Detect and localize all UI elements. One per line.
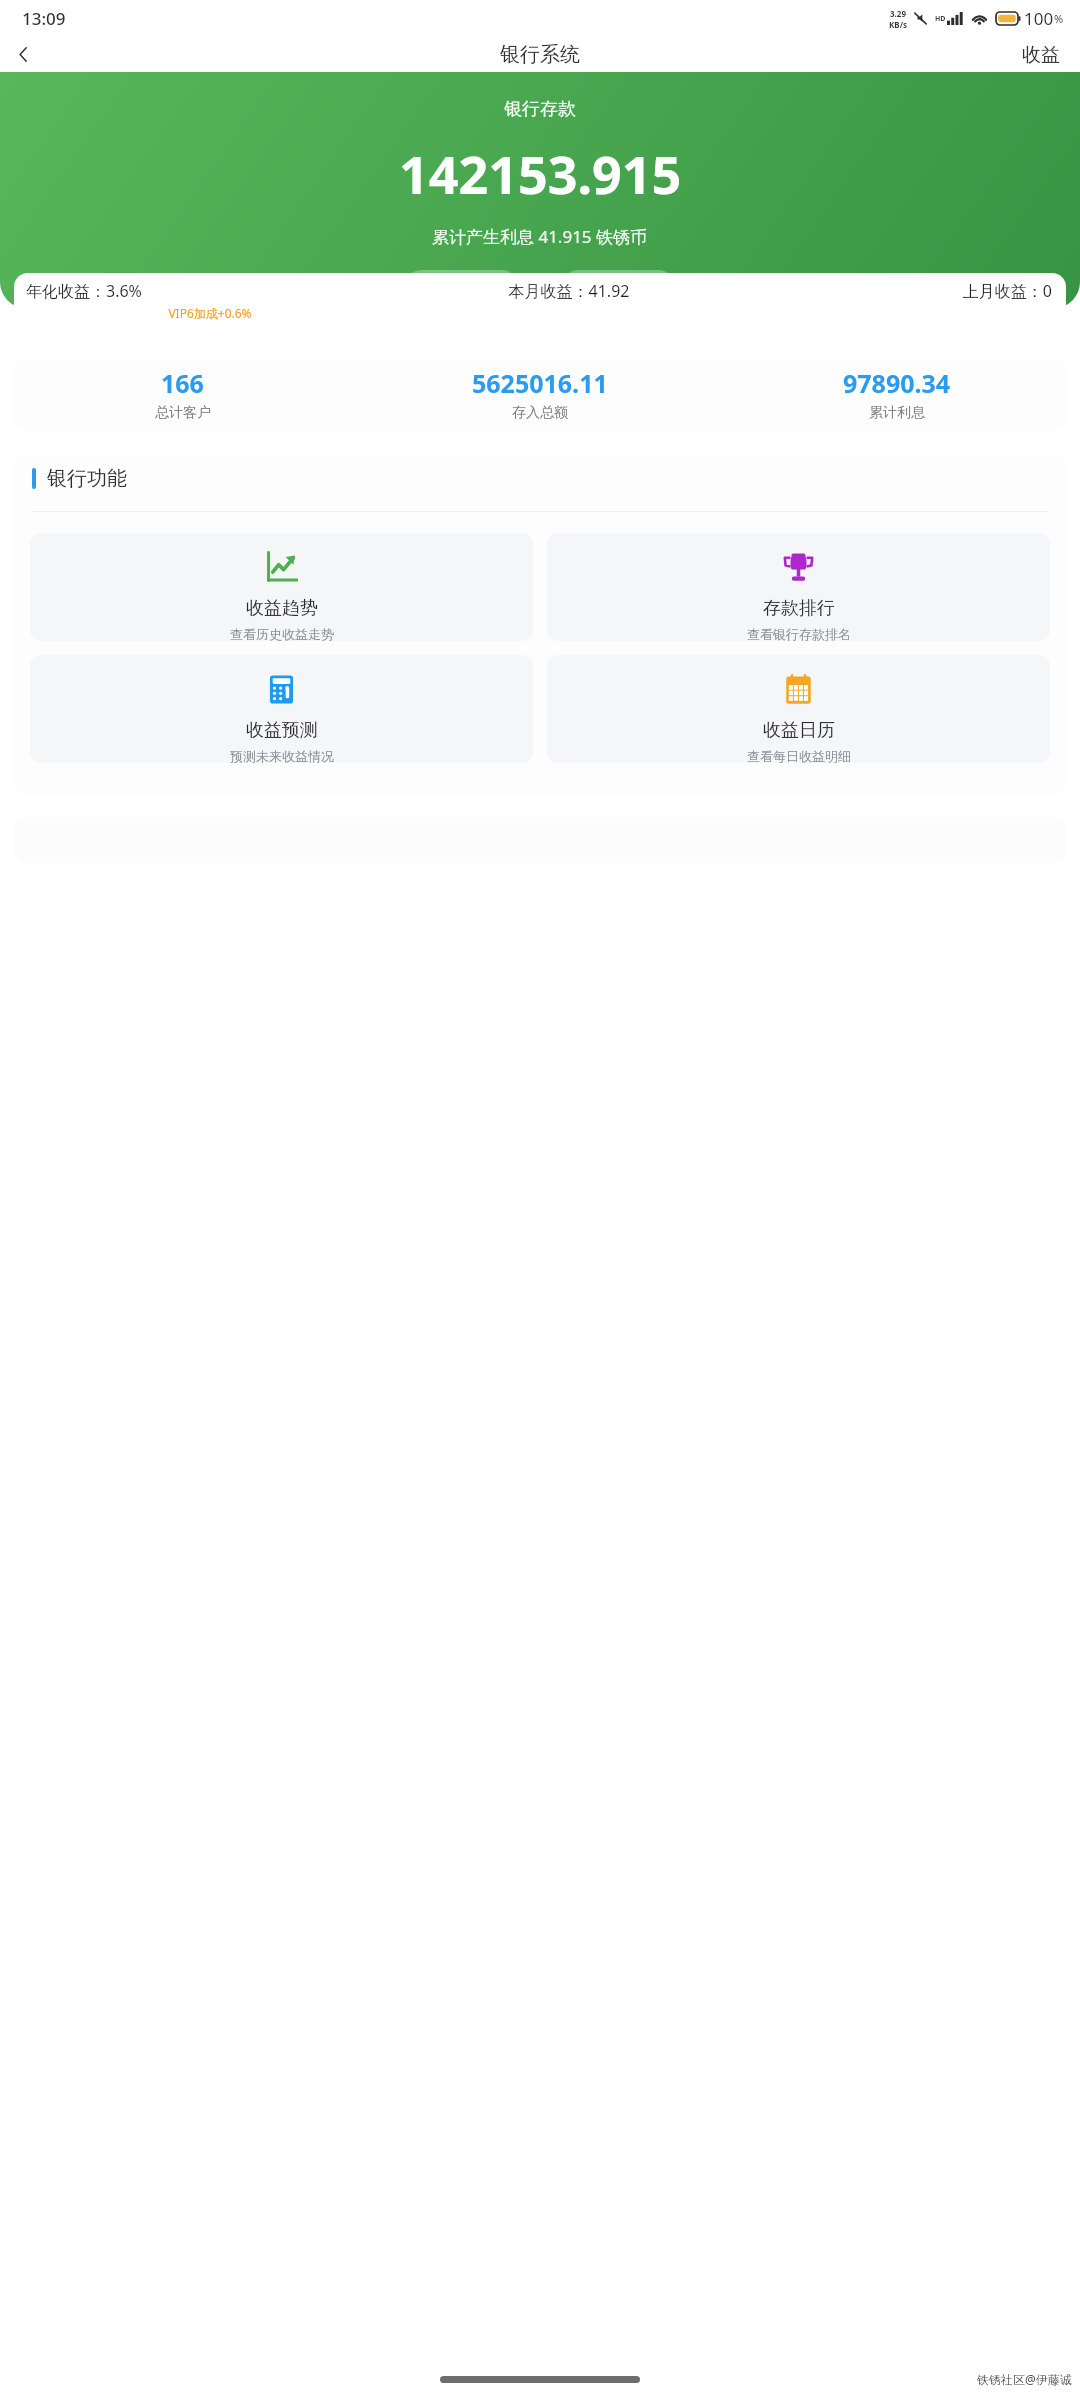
button[interactable]: Back [0,37,46,72]
staticText: 本月收益：41.92 [394,280,744,302]
staticText: 年化收益：3.6% [26,280,142,302]
staticText: 166 [161,366,204,400]
staticText: 查看历史收益走势 [230,626,334,641]
button[interactable]: 收益日历 [547,655,1050,763]
button[interactable]: 收益预测 [30,655,533,763]
staticText: 142153.915 [399,138,682,209]
staticText: 5625016.11 [472,366,608,400]
button[interactable]: 存入 [403,270,520,308]
button[interactable]: 转出 [560,270,677,308]
staticText: 总计客户 [155,404,211,422]
button[interactable]: 收益趋势 [30,533,533,641]
staticText: % [1054,11,1064,26]
staticText: VIP6加成+0.6% [26,305,394,321]
staticText: 收益预测 [246,719,318,742]
staticText: 查看每日收益明细 [747,748,851,763]
staticText: 收益 [1022,43,1060,66]
staticText: KB/s [889,19,907,30]
staticText: 100 [1024,7,1054,30]
button[interactable]: 收益 [1018,37,1064,72]
staticText: 97890.34 [843,366,951,400]
staticText: HD [935,14,946,24]
staticText: 存款排行 [763,597,835,620]
button[interactable]: 年化收益：3.6% [14,273,1066,330]
staticText: 上月收益：0 [744,280,1052,302]
staticText: 累计利息 [869,404,925,422]
staticText: 收益趋势 [246,597,318,620]
staticText: 银行存款 [504,98,576,121]
staticText: 铁锈社区@伊藤诚 [977,2371,1072,2387]
staticText: 收益日历 [763,719,835,742]
staticText: 转出 [599,277,639,302]
staticText: 累计产生利息 41.915 铁锈币 [432,225,648,248]
staticText: 3.29 [890,8,906,19]
staticText: 预测未来收益情况 [230,748,334,763]
staticText: 查看银行存款排名 [747,626,851,641]
button[interactable]: 存款排行 [547,533,1050,641]
staticText: 13:09 [22,7,66,30]
staticText: 银行功能 [47,466,127,491]
staticText: 银行系统 [500,42,580,67]
staticText: 存入总额 [512,404,568,422]
